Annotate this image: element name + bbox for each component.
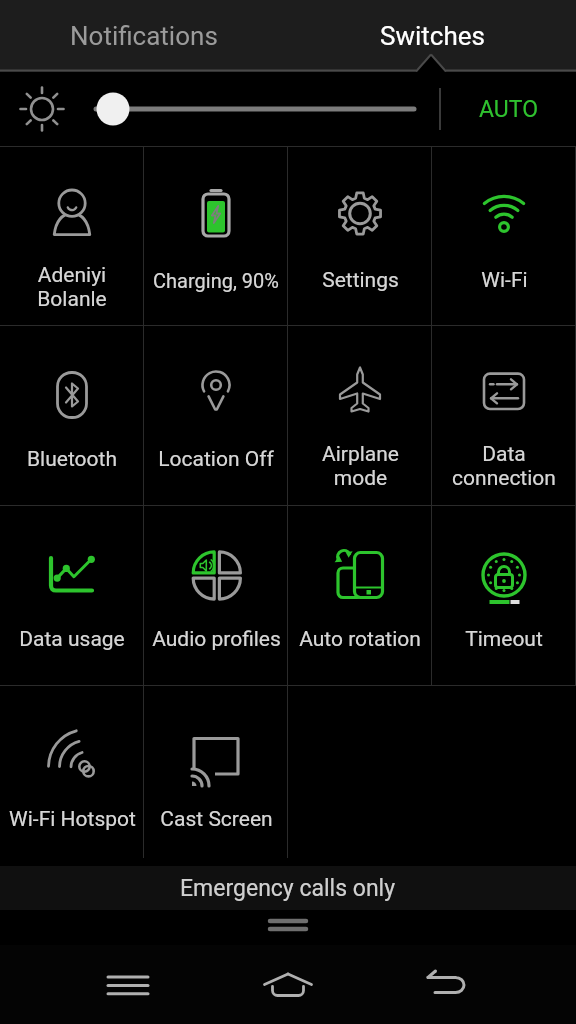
button[interactable]: Switches	[288, 0, 576, 72]
button[interactable]: Auto rotation	[288, 506, 432, 685]
button[interactable]	[88, 945, 168, 1024]
staticText: Timeout	[465, 627, 543, 652]
button[interactable]: Wi-Fi	[432, 147, 576, 325]
button[interactable]: Data connection	[432, 326, 576, 505]
button[interactable]: Data usage	[0, 506, 144, 685]
button[interactable]: Wi-Fi Hotspot	[0, 686, 144, 858]
button[interactable]	[0, 72, 576, 146]
button[interactable]: Cast Screen	[144, 686, 288, 858]
button[interactable]	[408, 945, 488, 1024]
staticText: Emergency calls only	[180, 875, 396, 902]
button[interactable]: AUTO	[440, 72, 576, 146]
staticText: Data usage	[19, 627, 125, 652]
staticText: Wi-Fi Hotspot	[9, 807, 136, 832]
button[interactable]	[0, 910, 576, 945]
button[interactable]: Timeout	[432, 506, 576, 685]
staticText: Cast Screen	[160, 807, 273, 832]
staticText: AUTO	[479, 96, 538, 123]
staticText: Settings	[322, 268, 399, 293]
button[interactable]: Adeniyi Bolanle	[0, 147, 144, 325]
staticText: Notifications	[70, 21, 218, 51]
staticText: Data connection	[452, 442, 556, 490]
staticText: Switches	[380, 21, 485, 51]
staticText: Location Off	[158, 447, 274, 472]
staticText: Airplane mode	[322, 442, 399, 490]
staticText: Adeniyi Bolanle	[37, 263, 107, 311]
button[interactable]: Charging, 90%	[144, 147, 288, 325]
button[interactable]: Notifications	[0, 0, 288, 72]
button[interactable]	[248, 945, 328, 1024]
button[interactable]: Airplane mode	[288, 326, 432, 505]
staticText: Auto rotation	[299, 627, 421, 652]
staticText: Wi-Fi	[481, 268, 528, 293]
staticText: Bluetooth	[27, 447, 117, 472]
button[interactable]: Settings	[288, 147, 432, 325]
staticText: Audio profiles	[152, 627, 281, 652]
button[interactable]: Audio profiles	[144, 506, 288, 685]
button[interactable]: Location Off	[144, 326, 288, 505]
button[interactable]: Bluetooth	[0, 326, 144, 505]
staticText: Charging, 90%	[153, 269, 279, 292]
